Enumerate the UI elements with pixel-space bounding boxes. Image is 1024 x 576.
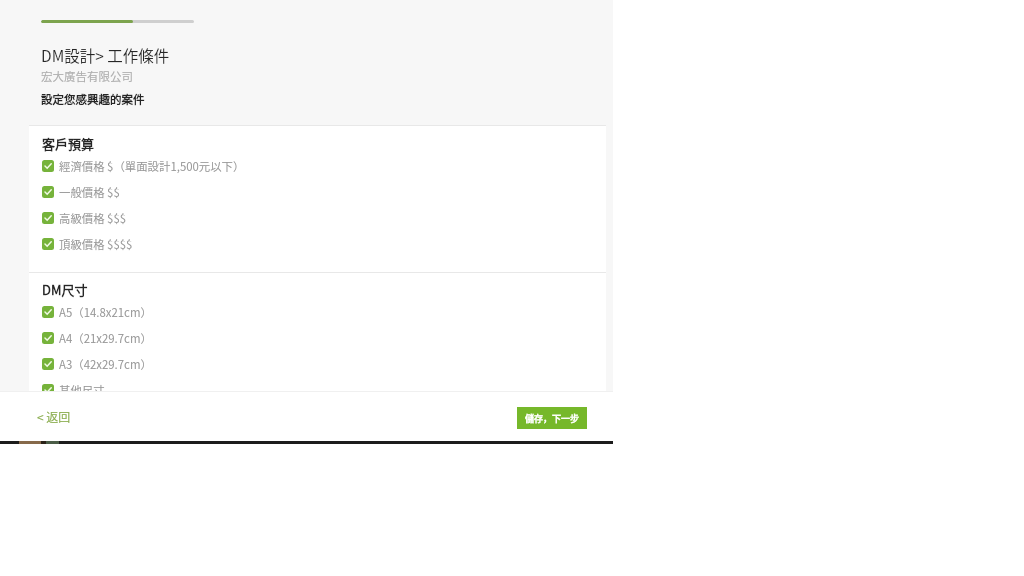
staticText: A3（42x29.7cm） [59,356,152,373]
staticText: 頂級價格 $$$$ [59,236,133,253]
button[interactable]: 一般價格 $$ [29,179,606,205]
staticText: 一般價格 $$ [59,184,120,201]
button[interactable]: 經濟價格 $（單面設計1,500元以下） [29,153,606,179]
staticText: 其他尺寸 [59,382,105,391]
button[interactable]: 其他尺寸 [29,377,606,391]
staticText: 設定您感興趣的案件 [41,91,145,108]
button[interactable]: A3（42x29.7cm） [29,351,606,377]
staticText: 宏大廣告有限公司 [41,68,133,85]
staticText: 客戶預算 [42,134,95,153]
staticText: 高級價格 $$$ [59,210,127,227]
button[interactable]: 儲存，下一步 [517,407,587,429]
button[interactable]: A4（21x29.7cm） [29,325,606,351]
staticText: DM設計> 工作條件 [41,44,170,66]
staticText: A4（21x29.7cm） [59,330,152,347]
button[interactable]: 頂級價格 $$$$ [29,231,606,257]
button[interactable]: 返回 Back [33,403,75,430]
staticText: A5（14.8x21cm） [59,304,152,321]
staticText: 儲存，下一步 [525,412,580,425]
staticText: < 返回 [37,408,71,425]
button[interactable]: 高級價格 $$$ [29,205,606,231]
button[interactable]: A5（14.8x21cm） [29,299,606,325]
staticText: DM尺寸 [42,280,88,299]
staticText: 經濟價格 $（單面設計1,500元以下） [59,158,245,175]
